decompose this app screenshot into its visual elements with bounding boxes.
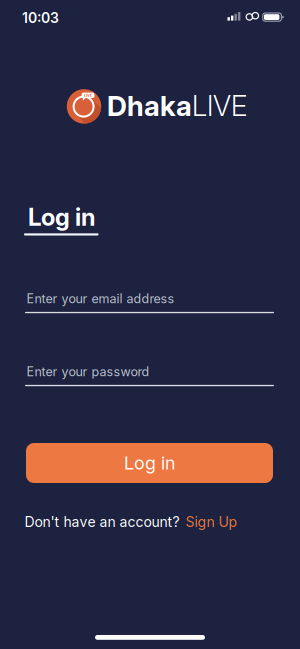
button[interactable]: Enter your email address bbox=[25, 291, 274, 313]
staticText: LIVE bbox=[84, 93, 92, 97]
staticText: Log in bbox=[28, 203, 95, 231]
button[interactable]: Log in bbox=[26, 443, 273, 483]
staticText: Enter your email address bbox=[26, 291, 174, 306]
staticText: Enter your password bbox=[26, 364, 149, 379]
staticText: Log in bbox=[124, 452, 175, 474]
staticText: DhakaLIVE bbox=[107, 89, 247, 122]
staticText: Sign Up bbox=[185, 514, 237, 530]
button[interactable]: Sign Up bbox=[185, 514, 237, 530]
staticText: Don't have an account? bbox=[24, 514, 179, 530]
button[interactable]: Enter your password bbox=[25, 364, 274, 386]
staticText: 10:03 bbox=[22, 10, 59, 26]
